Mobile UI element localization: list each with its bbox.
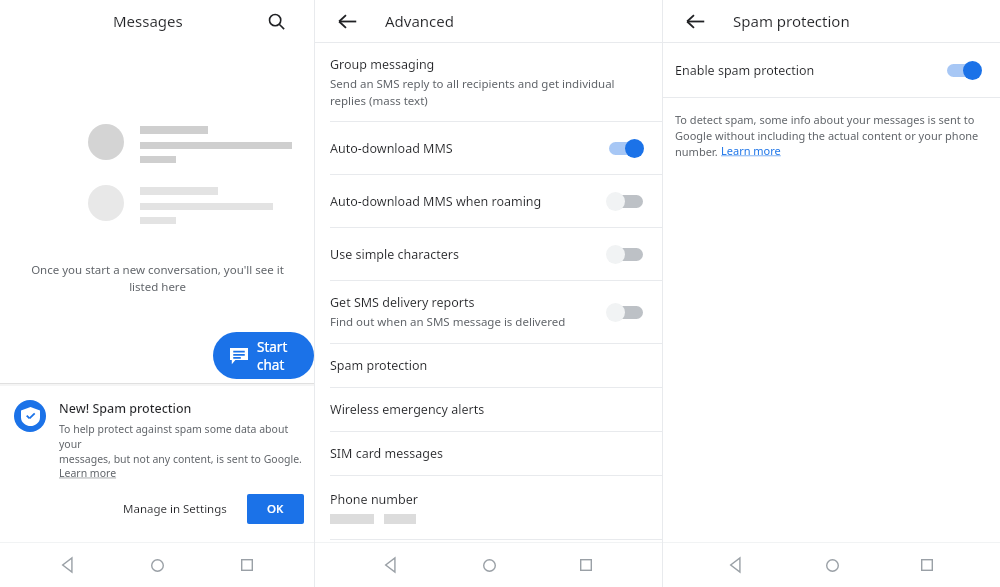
staticText: Find out when an SMS message is delivere… xyxy=(330,314,566,330)
button[interactable]: Get SMS delivery reports xyxy=(315,281,662,343)
button[interactable]: Enable spam protection xyxy=(663,43,1000,97)
staticText: Advanced xyxy=(385,11,455,31)
staticText: New! Spam protection xyxy=(59,400,192,417)
button[interactable]: Manage in Settings xyxy=(115,495,235,523)
button[interactable]: Recents xyxy=(905,543,949,587)
staticText: OK xyxy=(267,501,284,517)
button[interactable]: Start chat xyxy=(213,332,314,379)
staticText: To help protect against spam some data a… xyxy=(59,422,304,466)
staticText: Start chat xyxy=(257,338,297,374)
button[interactable]: Phone number xyxy=(315,476,662,539)
button[interactable]: On xyxy=(606,135,648,161)
staticText: To detect spam, some info about your mes… xyxy=(675,112,979,159)
button[interactable]: Home xyxy=(467,543,511,587)
button[interactable]: Off xyxy=(606,241,648,267)
button[interactable]: Back xyxy=(714,543,758,587)
staticText: Spam protection xyxy=(330,357,428,374)
staticText: Phone number xyxy=(330,491,418,508)
staticText: Learn more xyxy=(721,143,781,158)
button[interactable]: Back xyxy=(369,543,413,587)
button[interactable]: Off xyxy=(606,299,648,325)
button[interactable]: Use simple characters xyxy=(315,228,662,280)
staticText: Enable spam protection xyxy=(675,62,944,79)
staticText: Auto-download MMS xyxy=(330,140,453,157)
button[interactable]: SIM card messages xyxy=(315,432,662,475)
button[interactable]: Back xyxy=(327,1,367,41)
staticText: Get SMS delivery reports xyxy=(330,294,475,311)
staticText: Wireless emergency alerts xyxy=(330,401,485,418)
staticText: Send an SMS reply to all recipients and … xyxy=(330,76,615,108)
button[interactable]: Learn more xyxy=(721,143,781,158)
staticText: Use simple characters xyxy=(330,246,459,263)
button[interactable]: Group messaging xyxy=(315,43,662,121)
button[interactable]: Back xyxy=(675,1,715,41)
staticText: Manage in Settings xyxy=(123,501,227,517)
button[interactable]: Home xyxy=(810,543,854,587)
button[interactable]: OK xyxy=(247,494,304,524)
button[interactable]: Home xyxy=(135,543,179,587)
button[interactable]: Learn more xyxy=(59,466,117,480)
staticText: Auto-download MMS when roaming xyxy=(330,193,542,210)
button[interactable]: Off xyxy=(606,188,648,214)
button[interactable]: Recents xyxy=(225,543,269,587)
staticText: Once you start a new conversation, you'l… xyxy=(31,262,284,295)
button[interactable]: Spam protection xyxy=(315,344,662,387)
staticText: Messages xyxy=(113,11,183,31)
staticText: SIM card messages xyxy=(330,445,444,462)
button[interactable]: On xyxy=(944,57,986,83)
button[interactable]: Auto-download MMS xyxy=(315,122,662,174)
staticText: Spam protection xyxy=(733,11,850,31)
staticText: Group messaging xyxy=(330,56,435,73)
button[interactable]: Auto-download MMS when roaming xyxy=(315,175,662,227)
button[interactable]: Search xyxy=(259,4,293,38)
button[interactable]: Wireless emergency alerts xyxy=(315,388,662,431)
button[interactable]: Recents xyxy=(564,543,608,587)
button[interactable]: Back xyxy=(46,543,90,587)
